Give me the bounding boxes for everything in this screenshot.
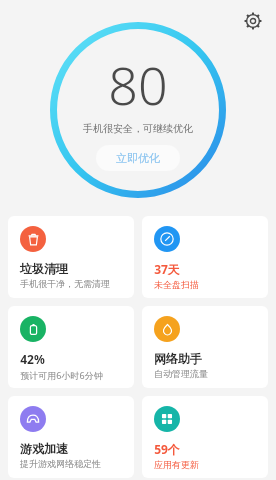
staticText: 预计可用6小时6分钟 xyxy=(20,369,103,381)
staticText: 提升游戏网络稳定性 xyxy=(20,458,101,469)
button[interactable]: 游戏加速 xyxy=(8,396,134,478)
staticText: 37天 xyxy=(154,261,180,277)
staticText: 自动管理流量 xyxy=(154,368,208,379)
button[interactable]: 网络助手 xyxy=(142,306,268,388)
button[interactable]: 42% xyxy=(8,306,134,388)
staticText: 42% xyxy=(20,351,45,367)
staticText: 垃圾清理 xyxy=(20,261,68,276)
staticText: 立即优化 xyxy=(116,151,160,165)
staticText: 应用有更新 xyxy=(154,459,199,470)
staticText: 59个 xyxy=(154,441,180,457)
button[interactable]: 37天 xyxy=(142,216,268,298)
staticText: 80 xyxy=(108,49,168,120)
staticText: 手机很安全，可继续优化 xyxy=(83,122,193,135)
button[interactable]: Settings xyxy=(238,6,268,36)
staticText: 网络助手 xyxy=(154,351,202,366)
staticText: 游戏加速 xyxy=(20,441,68,456)
button[interactable]: 59个 xyxy=(142,396,268,478)
button[interactable]: 立即优化 xyxy=(96,145,180,171)
staticText: 手机很干净，无需清理 xyxy=(20,278,110,289)
staticText: 未全盘扫描 xyxy=(154,279,199,290)
button[interactable]: 垃圾清理 xyxy=(8,216,134,298)
